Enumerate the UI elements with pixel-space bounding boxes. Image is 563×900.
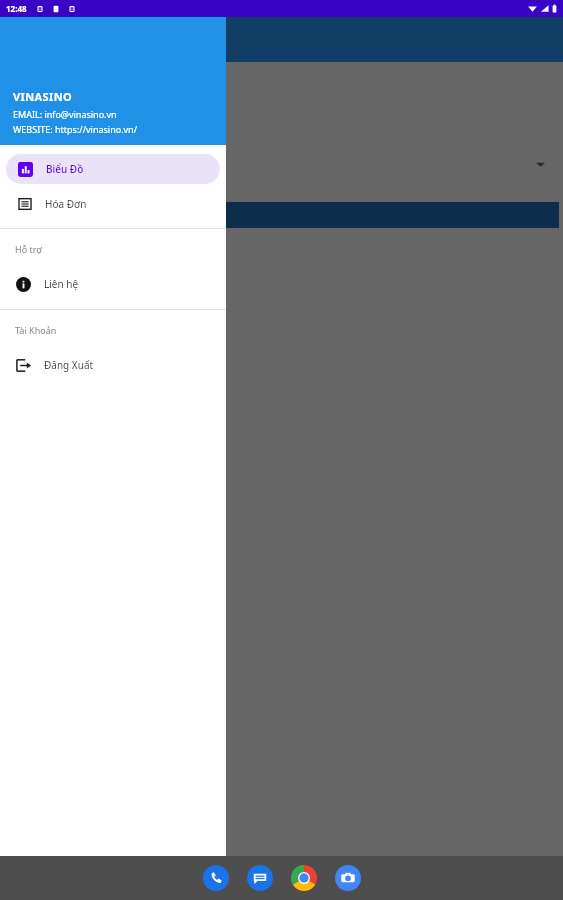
button[interactable]: Hóa Đơn [0,189,226,219]
staticText: Tài Khoản [15,324,57,336]
staticText: Đăng Xuất [44,358,94,372]
button[interactable]: Liên hệ [0,269,226,299]
staticText: Liên hệ [44,277,79,291]
button[interactable]: Đăng Xuất [0,350,226,380]
button[interactable]: Chọn năm [516,182,563,230]
staticText: TRA CỨU [30,207,93,223]
button[interactable]: Camera [335,865,361,891]
button[interactable]: TRA CỨU [4,202,559,228]
staticText: Hỗ trợ [15,243,42,255]
staticText: Biểu Đồ [46,162,84,176]
staticText: WEBSITE: https://vinasino.vn/ [13,123,138,135]
button[interactable]: Biểu Đồ [6,154,220,184]
button[interactable]: Chrome [291,865,317,891]
staticText: VINASINO [13,89,73,104]
button[interactable]: Chọn tháng [516,140,563,188]
button[interactable]: Phone [203,865,229,891]
button[interactable]: Messages [247,865,273,891]
staticText: 12:48 [6,3,27,14]
staticText: EMAIL: info@vinasino.vn [13,108,117,120]
staticText: Hóa Đơn [45,197,87,211]
